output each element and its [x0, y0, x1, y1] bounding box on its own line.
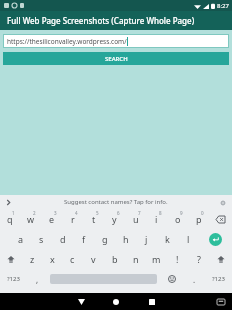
- button[interactable]: https://thesiliconvalley.wordpress.com/: [3, 34, 229, 48]
- button[interactable]: !: [167, 249, 188, 269]
- button[interactable]: g: [94, 229, 115, 249]
- button[interactable]: Shift right: [209, 249, 232, 269]
- button[interactable]: n: [125, 249, 146, 269]
- staticText: 1: [12, 210, 15, 216]
- staticText: ,: [36, 274, 39, 285]
- staticText: 0: [201, 210, 204, 216]
- staticText: 7: [138, 210, 141, 216]
- button[interactable]: Switch keyboard: [215, 296, 227, 308]
- staticText: j: [145, 233, 148, 245]
- button[interactable]: l: [178, 229, 199, 249]
- staticText: v: [91, 253, 96, 265]
- staticText: SEARCH: [105, 55, 128, 63]
- button[interactable]: Expand suggestions: [4, 198, 13, 207]
- button[interactable]: x: [42, 249, 62, 269]
- staticText: 2: [33, 210, 36, 216]
- button[interactable]: a: [10, 229, 31, 249]
- staticText: ?: [197, 253, 201, 265]
- staticText: w: [27, 213, 35, 225]
- staticText: .: [193, 274, 196, 285]
- button[interactable]: w: [20, 209, 41, 229]
- staticText: e: [49, 213, 55, 225]
- button[interactable]: j: [136, 229, 157, 249]
- staticText: m: [152, 253, 161, 265]
- staticText: d: [60, 233, 66, 245]
- button[interactable]: .: [184, 269, 204, 289]
- button[interactable]: p: [188, 209, 209, 229]
- staticText: o: [175, 213, 181, 225]
- staticText: x: [50, 253, 55, 265]
- staticText: 6: [117, 210, 120, 216]
- staticText: u: [133, 213, 139, 225]
- staticText: p: [196, 213, 202, 225]
- staticText: 9: [180, 210, 183, 216]
- staticText: https://thesiliconvalley.wordpress.com/: [7, 37, 127, 46]
- staticText: z: [30, 253, 35, 265]
- button[interactable]: u: [125, 209, 146, 229]
- button[interactable]: ?123: [0, 269, 27, 289]
- button[interactable]: q: [0, 209, 20, 229]
- button[interactable]: c: [62, 249, 83, 269]
- button[interactable]: r: [62, 209, 83, 229]
- button[interactable]: Shift: [0, 249, 22, 269]
- button[interactable]: Keyboard settings: [218, 198, 227, 207]
- button[interactable]: m: [146, 249, 167, 269]
- staticText: ?123: [212, 275, 225, 283]
- button[interactable]: y: [104, 209, 125, 229]
- button[interactable]: b: [104, 249, 125, 269]
- button[interactable]: Backspace: [209, 209, 232, 229]
- staticText: 5: [96, 210, 99, 216]
- button[interactable]: Suggest contact names? Tap for info.: [64, 198, 168, 206]
- staticText: b: [112, 253, 118, 265]
- button[interactable]: Recents: [145, 295, 159, 309]
- staticText: 3: [54, 210, 57, 216]
- staticText: n: [133, 253, 139, 265]
- button[interactable]: Emoji: [160, 269, 184, 289]
- button[interactable]: Enter: [199, 229, 232, 249]
- staticText: f: [82, 233, 86, 245]
- staticText: y: [112, 213, 117, 225]
- button[interactable]: Home: [109, 295, 123, 309]
- staticText: g: [102, 233, 108, 245]
- button[interactable]: i: [146, 209, 167, 229]
- staticText: !: [176, 253, 179, 265]
- staticText: r: [71, 213, 75, 225]
- staticText: l: [187, 233, 190, 245]
- button[interactable]: ,: [27, 269, 47, 289]
- button[interactable]: ?: [188, 249, 209, 269]
- button[interactable]: ?123: [204, 269, 232, 289]
- button[interactable]: e: [41, 209, 62, 229]
- button[interactable]: z: [22, 249, 42, 269]
- staticText: 8:27: [217, 2, 229, 10]
- staticText: k: [165, 233, 170, 245]
- button[interactable]: k: [157, 229, 178, 249]
- button[interactable]: s: [31, 229, 52, 249]
- staticText: c: [70, 253, 75, 265]
- staticText: q: [7, 213, 13, 225]
- staticText: ?123: [7, 275, 20, 283]
- button[interactable]: Back: [74, 295, 88, 309]
- button[interactable]: o: [167, 209, 188, 229]
- staticText: t: [92, 213, 96, 225]
- button[interactable]: v: [83, 249, 104, 269]
- button[interactable]: f: [73, 229, 94, 249]
- staticText: s: [39, 233, 44, 245]
- staticText: h: [123, 233, 129, 245]
- staticText: a: [18, 233, 24, 245]
- staticText: Full Web Page Screenshots (Capture Whole…: [7, 15, 195, 26]
- button[interactable]: h: [115, 229, 136, 249]
- button[interactable]: SEARCH: [3, 52, 229, 65]
- staticText: 8: [159, 210, 162, 216]
- button[interactable]: t: [83, 209, 104, 229]
- button[interactable]: d: [52, 229, 73, 249]
- staticText: 4: [75, 210, 78, 216]
- staticText: i: [155, 213, 158, 225]
